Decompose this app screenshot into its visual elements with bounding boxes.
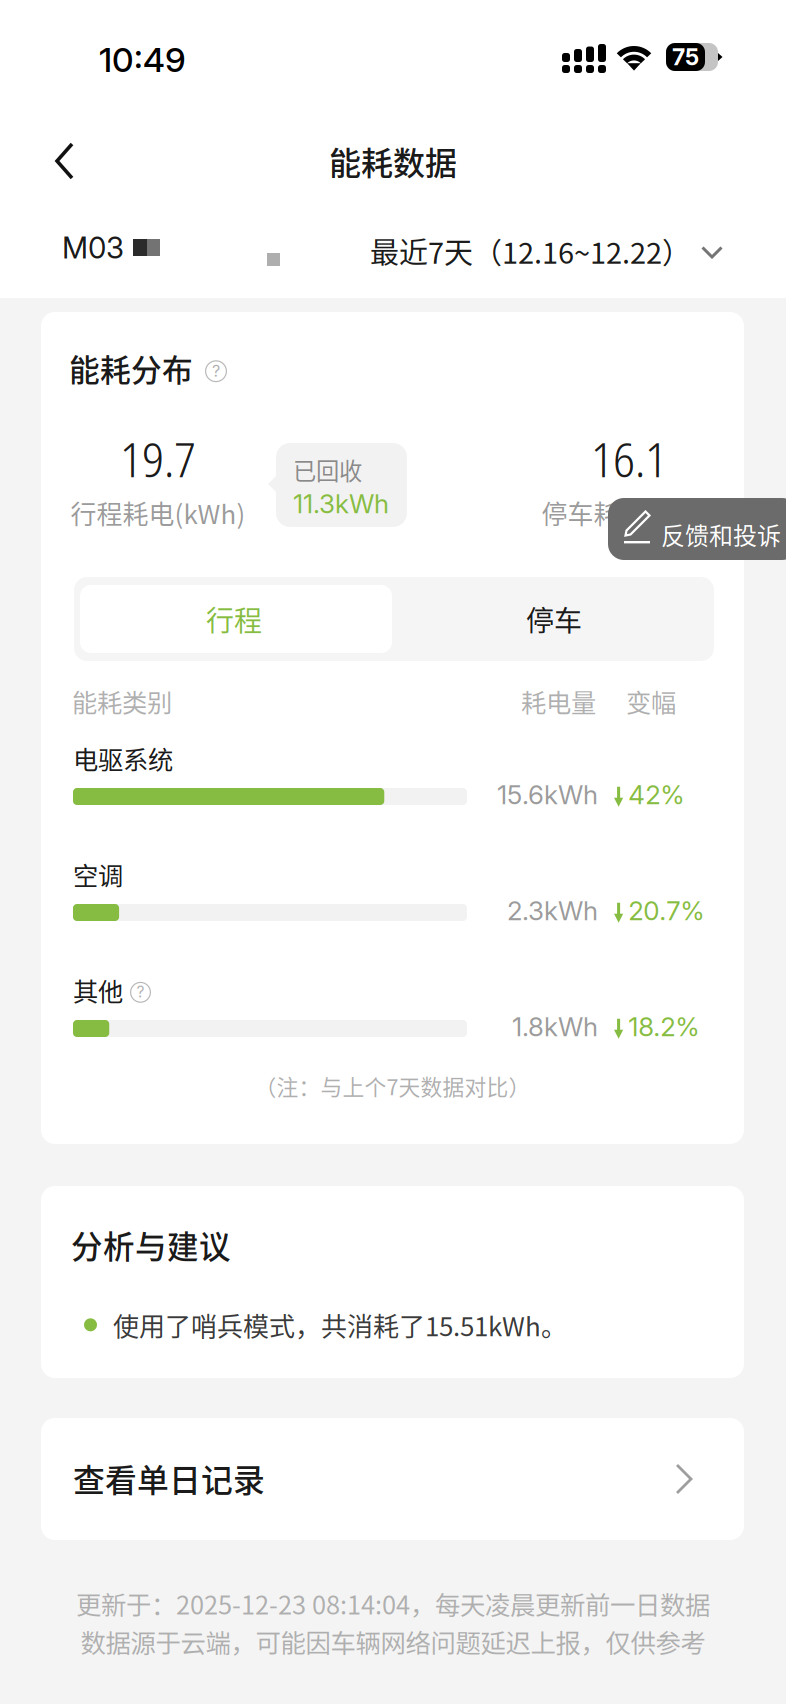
button[interactable]: 返回: [24, 116, 106, 206]
staticText: 行程: [206, 599, 262, 639]
staticText: 停车: [526, 599, 582, 639]
staticText: 20.7%: [628, 895, 704, 926]
staticText: 查看单日记录: [73, 1455, 265, 1501]
staticText: 18.2%: [628, 1011, 699, 1042]
staticText: 使用了哨兵模式，共消耗了15.51kWh。: [113, 1306, 567, 1344]
staticText: 19.7: [120, 426, 196, 491]
staticText: M03: [62, 230, 124, 266]
staticText: 能耗类别: [72, 683, 172, 720]
staticText: 空调: [73, 856, 123, 893]
staticText: 10:49: [99, 39, 186, 80]
staticText: 耗电量: [521, 683, 596, 720]
staticText: 更新于：2025-12-23 08:14:04，每天凌晨更新前一日数据: [76, 1585, 710, 1622]
button[interactable]: 停车: [394, 577, 714, 661]
staticText: 停车耗电(kWh): [541, 494, 716, 531]
staticText: 电驱系统: [73, 740, 173, 777]
staticText: ?: [212, 361, 220, 381]
staticText: 其他: [73, 972, 123, 1009]
staticText: 能耗分布: [69, 346, 193, 390]
staticText: 分析与建议: [71, 1222, 231, 1268]
staticText: 数据源于云端，可能因车辆网络问题延迟上报，仅供参考: [80, 1623, 705, 1660]
staticText: （注：与上个7天数据对比）: [254, 1070, 530, 1102]
button[interactable]: 反馈和投诉: [608, 498, 786, 560]
button[interactable]: 查看单日记录: [41, 1418, 744, 1540]
staticText: 最近7天（12.16~12.22）: [370, 230, 691, 272]
staticText: 变幅: [626, 683, 676, 720]
staticText: 11.3kWh: [293, 488, 389, 519]
staticText: 能耗数据: [329, 138, 457, 184]
staticText: 行程耗电(kWh): [70, 494, 245, 531]
staticText: 1.8kWh: [512, 1011, 598, 1042]
button[interactable]: 最近7天（12.16~12.22）: [370, 218, 723, 284]
staticText: 16.1: [591, 426, 667, 491]
staticText: 42%: [628, 779, 684, 810]
staticText: 2.3kWh: [507, 895, 598, 926]
staticText: 已回收: [293, 453, 362, 487]
button[interactable]: 行程: [74, 577, 394, 661]
staticText: 75: [672, 43, 699, 71]
staticText: ?: [136, 982, 144, 1001]
staticText: 反馈和投诉: [661, 517, 781, 552]
staticText: 15.6kWh: [497, 779, 598, 810]
